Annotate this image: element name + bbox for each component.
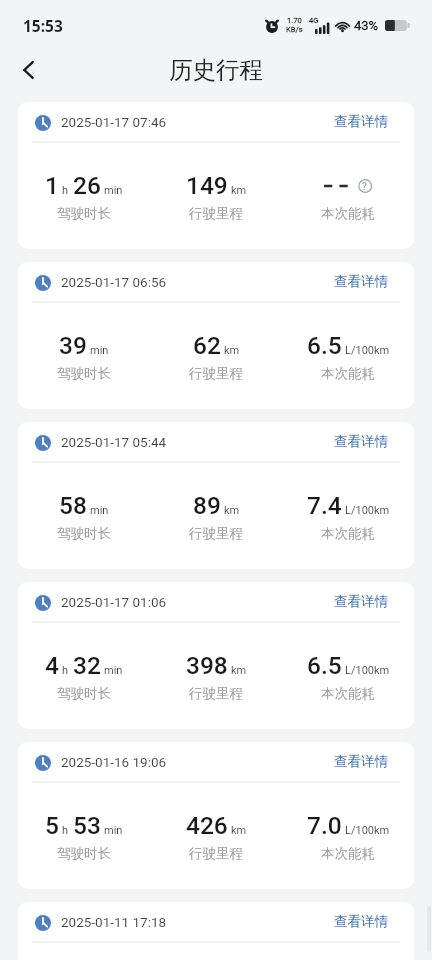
staticText: 本次能耗 [321,365,375,382]
button[interactable]: 2025-01-17 06:56 [18,262,414,409]
staticText: 43% [354,18,379,33]
staticText: 本次能耗 [321,845,375,862]
button[interactable]: 查看详情 [334,113,388,130]
staticText: L/100km [345,344,390,357]
staticText: 1.70 [287,16,302,25]
staticText: min [104,184,123,197]
button[interactable]: 2025-01-16 19:06 [18,742,414,889]
staticText: 32 [73,651,101,680]
staticText: 62 [193,331,221,360]
staticText: 行驶里程 [189,685,243,702]
button[interactable]: Back [8,50,48,90]
staticText: 驾驶时长 [57,845,111,862]
staticText: 驾驶时长 [57,365,111,382]
staticText: h [62,184,69,197]
staticText: 53 [73,811,101,840]
staticText: 6.5 [307,331,342,360]
staticText: 7.0 [307,811,342,840]
button[interactable]: 查看详情 [334,433,388,450]
staticText: 6.5 [307,651,342,680]
staticText: 2025-01-17 01:06 [61,594,167,610]
staticText: 行驶里程 [189,845,243,862]
staticText: 15:53 [23,15,63,36]
staticText: 本次能耗 [321,685,375,702]
staticText: L/100km [345,824,390,837]
staticText: km [231,824,247,837]
staticText: 查看详情 [334,753,388,770]
staticText: 历史行程 [169,55,263,85]
staticText: min [90,344,109,357]
staticText: 2025-01-17 05:44 [61,434,167,450]
staticText: km [231,664,247,677]
staticText: 7.4 [307,491,342,520]
staticText: 39 [59,331,87,360]
staticText: 查看详情 [334,913,388,930]
staticText: 2025-01-17 07:46 [61,114,167,130]
staticText: 89 [193,491,221,520]
staticText: km [231,184,247,197]
staticText: KB/s [286,25,303,34]
staticText: 行驶里程 [189,525,243,542]
button[interactable]: 查看详情 [334,913,388,930]
staticText: 行驶里程 [189,365,243,382]
staticText: 4G [309,16,319,25]
staticText: 本次能耗 [321,525,375,542]
staticText: 149 [186,171,228,200]
staticText: 26 [73,171,101,200]
staticText: 4 [45,651,59,680]
staticText: min [90,504,109,517]
staticText: h [62,664,69,677]
staticText: L/100km [345,664,390,677]
staticText: 58 [59,491,87,520]
staticText: 398 [186,651,228,680]
staticText: 2025-01-17 06:56 [61,274,167,290]
staticText: km [224,504,240,517]
button[interactable]: 查看详情 [334,593,388,610]
staticText: 驾驶时长 [57,205,111,222]
staticText: 5 [45,811,59,840]
button[interactable]: 2025-01-17 07:46 [18,102,414,249]
staticText: 查看详情 [334,433,388,450]
staticText: 1 [45,171,59,200]
staticText: min [104,664,123,677]
button[interactable]: 查看详情 [334,273,388,290]
staticText: 查看详情 [334,273,388,290]
button[interactable]: 2025-01-11 17:18 [18,902,414,960]
button[interactable]: 2025-01-17 05:44 [18,422,414,569]
staticText: 驾驶时长 [57,525,111,542]
staticText: 2025-01-11 17:18 [61,914,167,930]
staticText: 驾驶时长 [57,685,111,702]
staticText: ? [362,181,367,193]
staticText: min [104,824,123,837]
staticText: 本次能耗 [321,205,375,222]
button[interactable]: 查看详情 [334,753,388,770]
staticText: 行驶里程 [189,205,243,222]
staticText: 426 [186,811,228,840]
staticText: km [224,344,240,357]
staticText: 查看详情 [334,113,388,130]
staticText: 查看详情 [334,593,388,610]
button[interactable]: 2025-01-17 01:06 [18,582,414,729]
staticText: 2025-01-16 19:06 [61,754,167,770]
staticText: L/100km [345,504,390,517]
staticText: h [62,824,69,837]
